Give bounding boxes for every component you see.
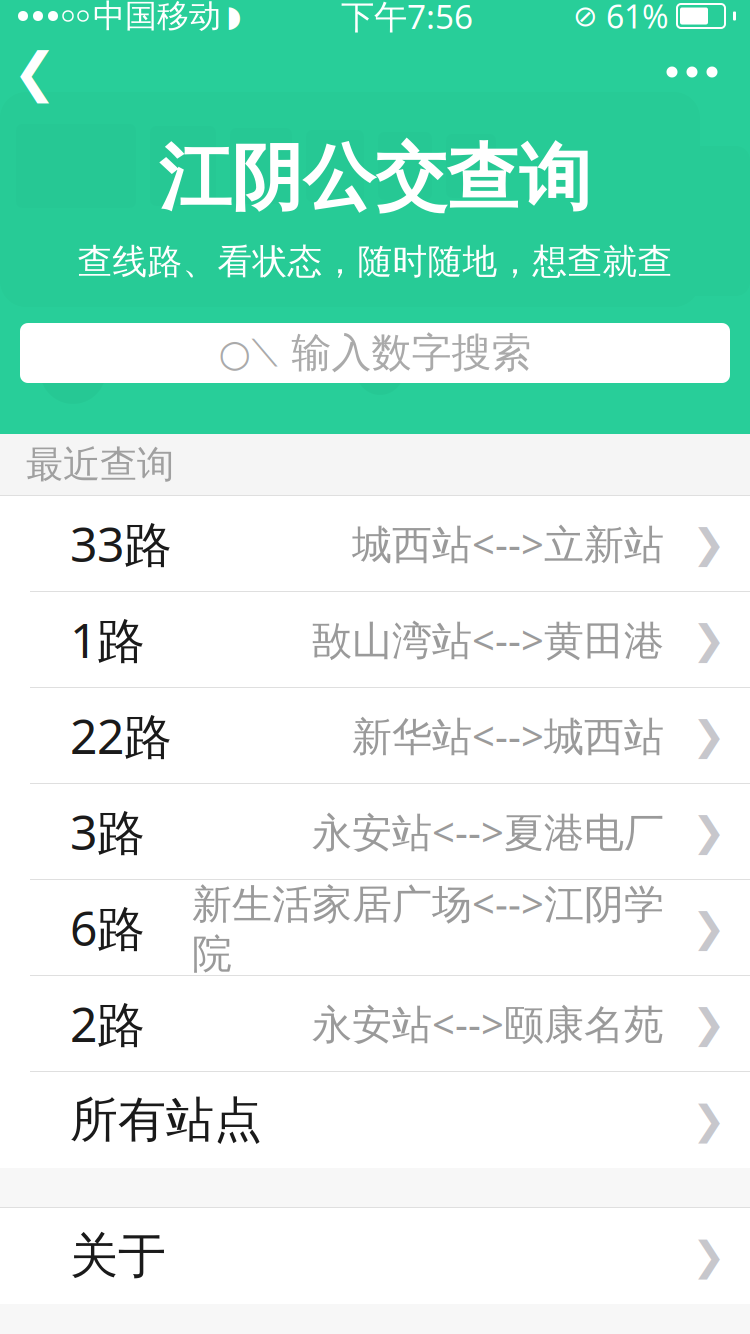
staticText: ❮ bbox=[12, 42, 57, 102]
button[interactable]: 所有站点 bbox=[0, 1072, 750, 1168]
button[interactable]: 33路 bbox=[0, 496, 750, 592]
staticText: 2路 bbox=[70, 992, 145, 1055]
staticText: ❯ bbox=[692, 1001, 726, 1046]
staticText: ❯ bbox=[692, 1097, 726, 1143]
staticText: 敔山湾站<-->黄田港 bbox=[312, 613, 664, 666]
staticText: 查线路、看状态，随时随地，想查就查 bbox=[77, 240, 672, 283]
staticText: 永安站<-->夏港电厂 bbox=[312, 805, 664, 858]
staticText: ❯ bbox=[692, 617, 726, 662]
staticText: ⊘ bbox=[573, 0, 598, 33]
staticText: 所有站点 bbox=[70, 1090, 262, 1149]
button[interactable]: Back bbox=[0, 37, 70, 107]
staticText: 下午7:56 bbox=[341, 0, 473, 38]
staticText: ❯ bbox=[692, 521, 726, 566]
button[interactable]: More options bbox=[648, 37, 736, 107]
staticText: 新生活家居广场<-->江阴学院 bbox=[192, 876, 664, 979]
staticText: 永安站<-->颐康名苑 bbox=[312, 997, 664, 1050]
button[interactable]: 关于 bbox=[0, 1208, 750, 1304]
staticText: 最近查询 bbox=[26, 442, 174, 487]
staticText: ❯ bbox=[692, 905, 726, 950]
button[interactable]: 22路 bbox=[0, 688, 750, 784]
staticText: 1路 bbox=[70, 608, 145, 671]
staticText: 城西站<-->立新站 bbox=[352, 517, 664, 570]
button[interactable]: 3路 bbox=[0, 784, 750, 880]
staticText: 22路 bbox=[70, 704, 172, 767]
staticText: 3路 bbox=[70, 800, 145, 863]
staticText: 61% bbox=[606, 0, 669, 37]
staticText: ◗ bbox=[226, 0, 241, 33]
staticText: 关于 bbox=[70, 1226, 166, 1285]
button[interactable]: 输入数字搜索 bbox=[20, 323, 730, 383]
staticText: 新华站<-->城西站 bbox=[352, 709, 664, 762]
button[interactable]: 6路 bbox=[0, 880, 750, 976]
staticText: 6路 bbox=[70, 896, 145, 959]
staticText: ❯ bbox=[692, 809, 726, 854]
button[interactable]: 1路 bbox=[0, 592, 750, 688]
staticText: 33路 bbox=[70, 512, 172, 575]
staticText: ❯ bbox=[692, 1233, 726, 1279]
staticText: ❯ bbox=[692, 713, 726, 758]
staticText: 中国移动 bbox=[93, 0, 221, 36]
staticText: ○⟍ bbox=[218, 332, 277, 374]
staticText: 输入数字搜索 bbox=[291, 328, 531, 378]
staticText: 江阴公交查询 bbox=[159, 134, 591, 222]
button[interactable]: 2路 bbox=[0, 976, 750, 1072]
